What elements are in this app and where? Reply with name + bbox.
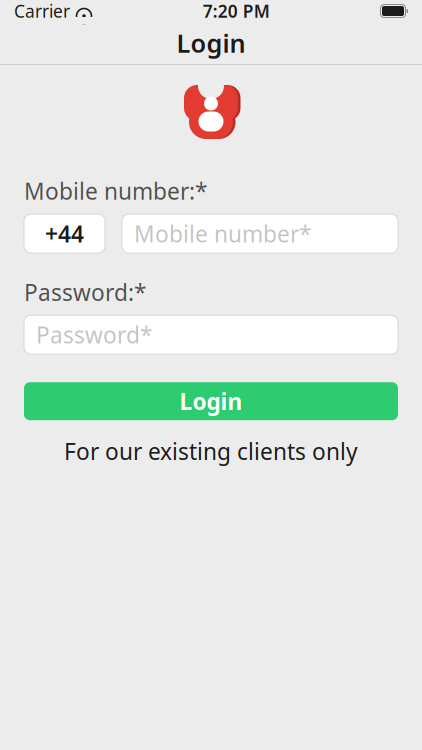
staticText: Password:*: [24, 277, 146, 307]
button[interactable]: Mobile number*: [122, 214, 398, 253]
staticText: Login: [179, 386, 242, 416]
staticText: Mobile number:*: [24, 176, 207, 206]
button[interactable]: +44: [24, 214, 105, 253]
staticText: For our existing clients only: [64, 436, 358, 466]
button[interactable]: Password*: [24, 315, 398, 354]
staticText: Password*: [36, 320, 152, 350]
staticText: +44: [45, 219, 84, 249]
staticText: Login: [176, 26, 245, 60]
staticText: Carrier: [14, 0, 70, 22]
staticText: 7:20 PM: [203, 0, 270, 22]
staticText: Mobile number*: [134, 219, 311, 249]
button[interactable]: Login: [24, 382, 398, 420]
